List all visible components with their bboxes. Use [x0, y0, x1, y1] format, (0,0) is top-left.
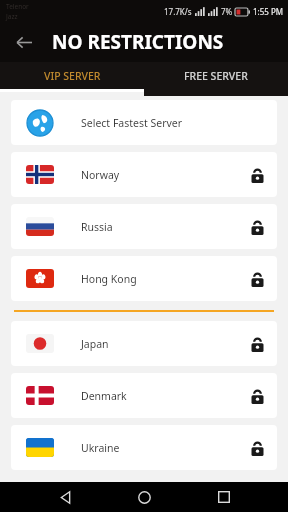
staticText: Ukraine [81, 441, 120, 455]
staticText: Telenor [6, 2, 29, 11]
button[interactable]: Norway [11, 152, 277, 197]
staticText: Jazz [6, 12, 18, 21]
button[interactable]: Select Fastest Server [11, 100, 277, 145]
button[interactable]: Hong Kong [11, 256, 277, 301]
button[interactable]: Back [9, 28, 37, 56]
button[interactable]: Russia [11, 204, 277, 249]
button[interactable]: Back [50, 482, 80, 512]
other: Locked server [247, 386, 267, 406]
staticText: FREE SERVER [184, 69, 248, 83]
other: Locked server [247, 165, 267, 185]
button[interactable]: Japan [11, 321, 277, 366]
button[interactable]: FREE SERVER [144, 62, 288, 89]
staticText: 1:55 PM [253, 6, 284, 17]
other: Locked server [247, 269, 267, 289]
button[interactable]: Recent apps [209, 482, 239, 512]
staticText: Japan [81, 337, 109, 351]
staticText: VIP SERVER [44, 69, 101, 83]
other: Locked server [247, 438, 267, 458]
button[interactable]: Denmark [11, 373, 277, 418]
button[interactable]: Home [129, 482, 159, 512]
button[interactable]: Ukraine [11, 425, 277, 470]
staticText: NO RESTRICTIONS [52, 29, 224, 55]
staticText: Select Fastest Server [81, 116, 183, 130]
staticText: 17.7K/s [164, 6, 192, 17]
staticText: Denmark [81, 389, 127, 403]
staticText: Hong Kong [81, 272, 137, 286]
staticText: Russia [81, 220, 113, 234]
other: Locked server [247, 217, 267, 237]
staticText: Norway [81, 168, 120, 182]
staticText: 7% [221, 6, 233, 17]
button[interactable]: VIP SERVER [0, 62, 144, 89]
other: Locked server [247, 334, 267, 354]
